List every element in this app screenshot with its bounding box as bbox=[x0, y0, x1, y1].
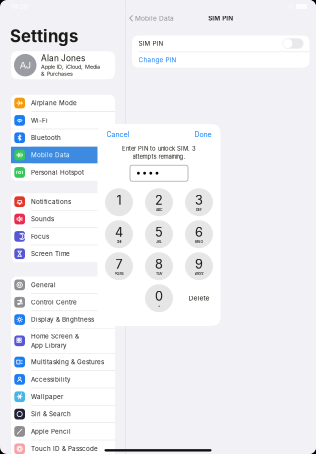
staticText: Change PIN bbox=[139, 56, 177, 64]
staticText: AJ bbox=[20, 59, 31, 71]
staticText: 5 bbox=[155, 224, 163, 240]
staticText: attempts remaining. bbox=[132, 153, 185, 160]
staticText: Airplane Mode bbox=[31, 99, 77, 107]
button[interactable]: 6 bbox=[185, 220, 213, 248]
staticText: 1 bbox=[116, 192, 121, 208]
button[interactable]: Airplane Mode bbox=[11, 95, 115, 111]
staticText: Apple Pencil bbox=[31, 428, 71, 435]
staticText: 6 bbox=[195, 224, 203, 240]
staticText: Settings bbox=[10, 26, 78, 46]
button[interactable]: Cancel bbox=[97, 124, 133, 145]
button[interactable]: Home Screen & bbox=[11, 329, 115, 353]
staticText: Touch ID & Passcode bbox=[31, 445, 98, 453]
staticText: Notifications bbox=[31, 198, 71, 205]
staticText: Bluetooth bbox=[31, 134, 61, 142]
button[interactable]: Touch ID & Passcode bbox=[11, 440, 115, 454]
button[interactable]: Siri & Search bbox=[11, 406, 115, 422]
button[interactable]: Delete bbox=[185, 284, 213, 312]
staticText: 7 bbox=[115, 256, 122, 272]
button[interactable]: 2 bbox=[145, 188, 173, 216]
staticText: Mobile Data bbox=[135, 14, 174, 22]
button[interactable]: General bbox=[11, 276, 115, 293]
staticText: 2 bbox=[155, 192, 163, 208]
staticText: Multitasking & Gestures bbox=[31, 358, 104, 366]
button[interactable]: Bluetooth bbox=[11, 129, 115, 146]
staticText: WXYZ bbox=[194, 272, 203, 276]
button[interactable]: 3 bbox=[185, 188, 213, 216]
staticText: MNO bbox=[194, 240, 203, 244]
staticText: Personal Hotspot bbox=[31, 169, 84, 176]
staticText: Control Centre bbox=[31, 298, 77, 306]
button[interactable]: Display & Brightness bbox=[11, 311, 115, 328]
staticText: Delete bbox=[188, 294, 209, 302]
button[interactable]: Wi-Fi bbox=[11, 112, 115, 129]
staticText: 19:20 bbox=[11, 3, 28, 10]
staticText: Mobile Data bbox=[31, 151, 70, 159]
staticText: 4 bbox=[115, 224, 123, 240]
button[interactable]: Accessibility bbox=[11, 371, 115, 388]
staticText: TUV bbox=[156, 272, 162, 276]
staticText: 9 bbox=[195, 256, 203, 272]
staticText: Display & Brightness bbox=[31, 316, 94, 323]
staticText: Cancel bbox=[106, 130, 129, 139]
staticText: Apple ID, iCloud, Media bbox=[41, 64, 100, 70]
staticText: ABC bbox=[156, 208, 162, 212]
button[interactable]: AJ bbox=[11, 51, 115, 79]
staticText: Alan Jones bbox=[41, 53, 85, 63]
staticText: Home Screen & bbox=[31, 332, 79, 340]
button[interactable]: Screen Time bbox=[11, 245, 115, 262]
staticText: Enter PIN to unlock SIM. 3 bbox=[122, 145, 196, 152]
staticText: SIM PIN bbox=[208, 14, 233, 22]
staticText: JKL bbox=[156, 240, 162, 244]
button[interactable]: Done bbox=[190, 124, 220, 145]
staticText: Wi-Fi bbox=[31, 117, 48, 124]
staticText: 0 bbox=[155, 288, 163, 304]
staticText: SIM PIN bbox=[139, 40, 164, 47]
staticText: Focus bbox=[31, 233, 49, 240]
staticText: Screen Time bbox=[31, 250, 70, 258]
staticText: App Library bbox=[31, 342, 67, 349]
button[interactable]: Change PIN bbox=[132, 52, 309, 68]
button[interactable]: 8 bbox=[145, 252, 173, 280]
button[interactable]: Focus bbox=[11, 228, 115, 245]
button[interactable]: 7 bbox=[105, 252, 133, 280]
button[interactable]: Mobile Data bbox=[126, 5, 179, 25]
staticText: General bbox=[31, 281, 56, 289]
staticText: Sounds bbox=[31, 215, 54, 223]
staticText: DEF bbox=[196, 208, 202, 212]
button[interactable]: Control Centre bbox=[11, 294, 115, 311]
staticText: Accessibility bbox=[31, 376, 71, 383]
button[interactable]: Mobile Data bbox=[11, 147, 115, 163]
staticText: Siri & Search bbox=[31, 410, 71, 418]
staticText: PQRS bbox=[114, 272, 123, 276]
staticText: 3 bbox=[195, 192, 203, 208]
button[interactable]: Personal Hotspot bbox=[11, 164, 115, 181]
staticText: & Purchases bbox=[41, 71, 73, 77]
staticText: Wallpaper bbox=[31, 393, 63, 401]
staticText: GHI bbox=[116, 240, 121, 244]
button[interactable]: 0 bbox=[145, 284, 173, 312]
button[interactable]: Multitasking & Gestures bbox=[11, 354, 115, 370]
staticText: 8 bbox=[155, 256, 163, 272]
button[interactable]: 5 bbox=[145, 220, 173, 248]
button[interactable]: 4 bbox=[105, 220, 133, 248]
staticText: Done bbox=[194, 130, 211, 139]
button[interactable]: SIM PIN bbox=[132, 35, 309, 51]
staticText: + bbox=[158, 304, 160, 308]
button[interactable]: Apple Pencil bbox=[11, 423, 115, 440]
button[interactable]: 1 bbox=[105, 188, 133, 216]
button[interactable]: Wallpaper bbox=[11, 388, 115, 405]
button[interactable]: 9 bbox=[185, 252, 213, 280]
button[interactable]: Notifications bbox=[11, 193, 115, 210]
button[interactable]: Sounds bbox=[11, 211, 115, 227]
